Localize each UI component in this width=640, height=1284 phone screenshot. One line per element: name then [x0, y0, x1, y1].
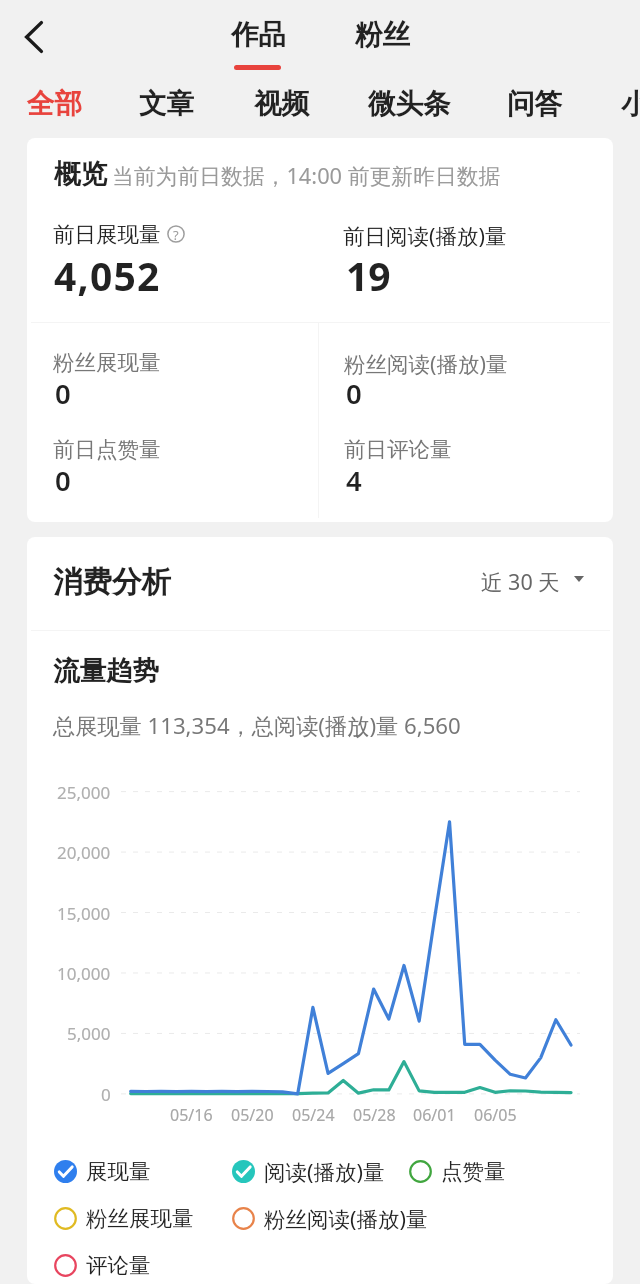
button[interactable]: 粉丝阅读(播放)量: [232, 1203, 428, 1233]
staticText: 0: [101, 1083, 111, 1106]
staticText: 06/01: [413, 1104, 456, 1126]
staticText: 当前为前日数据，14:00 前更新昨日数据: [112, 161, 501, 191]
staticText: 概览: [54, 157, 107, 190]
staticText: 微头条: [368, 87, 451, 122]
button[interactable]: 点赞量: [409, 1156, 506, 1186]
staticText: 粉丝展现量: [53, 349, 161, 376]
staticText: 粉丝阅读(播放)量: [344, 349, 508, 378]
staticText: 阅读(播放)量: [264, 1157, 385, 1186]
staticText: 06/05: [474, 1104, 517, 1126]
button[interactable]: 文章: [131, 78, 201, 128]
staticText: 前日展现量: [53, 221, 161, 248]
staticText: 近 30 天: [481, 567, 560, 596]
staticText: 05/16: [170, 1104, 213, 1126]
button[interactable]: 视频: [246, 78, 316, 128]
button[interactable]: 微头条: [360, 78, 458, 128]
staticText: 前日点赞量: [53, 436, 161, 463]
staticText: 0: [55, 375, 71, 412]
staticText: 前日评论量: [344, 436, 452, 463]
staticText: 视频: [254, 87, 309, 122]
staticText: 总展现量 113,354，总阅读(播放)量 6,560: [53, 710, 461, 740]
staticText: 4,052: [54, 249, 161, 302]
staticText: ?: [173, 226, 179, 244]
button[interactable]: 粉丝展现量: [54, 1203, 194, 1233]
staticText: 0: [346, 375, 362, 412]
staticText: 粉丝: [355, 18, 410, 53]
staticText: 前日阅读(播放)量: [343, 221, 507, 250]
staticText: 15,000: [57, 902, 111, 925]
staticText: 全部: [27, 87, 82, 122]
staticText: 5,000: [67, 1022, 111, 1045]
staticText: 05/28: [353, 1104, 396, 1126]
staticText: 05/24: [292, 1104, 335, 1126]
staticText: 粉丝阅读(播放)量: [264, 1204, 428, 1233]
staticText: 小: [621, 87, 640, 122]
staticText: 20,000: [57, 841, 111, 864]
staticText: 19: [346, 249, 391, 302]
staticText: 10,000: [57, 962, 111, 985]
button[interactable]: 粉丝: [345, 8, 418, 70]
button[interactable]: 问答: [499, 78, 569, 128]
staticText: 展现量: [86, 1158, 151, 1185]
staticText: 25,000: [57, 781, 111, 804]
button[interactable]: 小: [613, 78, 640, 128]
staticText: 问答: [507, 87, 562, 122]
staticText: 点赞量: [441, 1158, 506, 1185]
staticText: 流量趋势: [53, 654, 159, 687]
staticText: 文章: [139, 87, 194, 122]
staticText: 05/20: [231, 1104, 274, 1126]
staticText: 4: [346, 462, 362, 499]
staticText: 0: [55, 462, 71, 499]
staticText: 粉丝展现量: [86, 1205, 194, 1232]
button[interactable]: 作品: [221, 8, 294, 70]
staticText: 作品: [231, 18, 286, 53]
button[interactable]: Back: [10, 13, 58, 61]
button[interactable]: 阅读(播放)量: [232, 1156, 385, 1186]
button[interactable]: 近 30 天: [470, 560, 590, 604]
button[interactable]: 展现量: [54, 1156, 151, 1186]
staticText: 消费分析: [53, 564, 171, 601]
button[interactable]: 评论量: [54, 1250, 151, 1280]
staticText: 评论量: [86, 1252, 151, 1279]
button[interactable]: 全部: [19, 78, 89, 128]
